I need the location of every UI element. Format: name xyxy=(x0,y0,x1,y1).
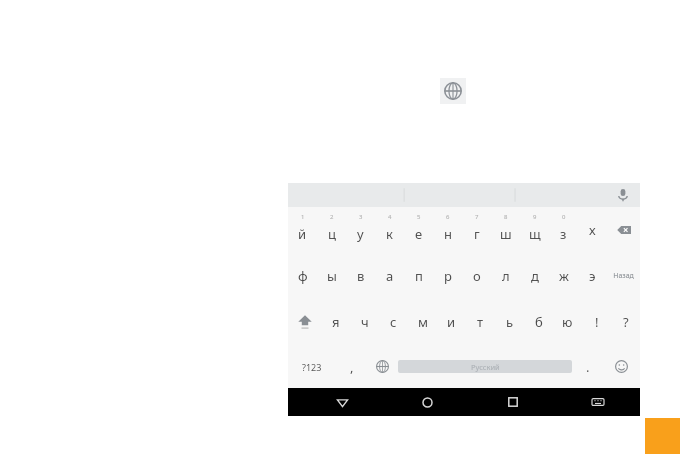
staticText: ж xyxy=(559,267,569,285)
button[interactable]: и xyxy=(437,299,466,345)
staticText: 0 xyxy=(562,213,566,221)
staticText: 5 xyxy=(417,213,421,221)
staticText: 7 xyxy=(475,213,479,221)
button[interactable]: 4 xyxy=(375,207,404,253)
button[interactable]: д xyxy=(520,253,549,299)
staticText: ы xyxy=(327,267,337,285)
staticText: т xyxy=(477,313,484,331)
staticText: г xyxy=(474,225,480,243)
button[interactable]: , xyxy=(336,345,367,388)
staticText: 2 xyxy=(330,213,334,221)
staticText: з xyxy=(560,225,567,243)
staticText: и xyxy=(447,313,456,331)
staticText: , xyxy=(350,358,354,376)
button[interactable]: ь xyxy=(495,299,524,345)
button[interactable]: ч xyxy=(350,299,379,345)
staticText: ! xyxy=(595,313,599,331)
button[interactable]: ю xyxy=(553,299,582,345)
staticText: п xyxy=(415,267,423,285)
button[interactable]: Switch language xyxy=(367,345,398,388)
button[interactable]: б xyxy=(524,299,553,345)
button[interactable]: ! xyxy=(582,299,611,345)
button[interactable]: с xyxy=(379,299,408,345)
staticText: й xyxy=(298,225,307,243)
staticText: я xyxy=(332,313,340,331)
button[interactable]: я xyxy=(321,299,350,345)
button[interactable]: п xyxy=(404,253,433,299)
button[interactable]: . xyxy=(572,345,603,388)
staticText: л xyxy=(502,267,510,285)
staticText: Назад xyxy=(613,271,634,281)
button[interactable]: х xyxy=(578,207,607,253)
staticText: ц xyxy=(328,225,336,243)
staticText: о xyxy=(473,267,481,285)
button[interactable]: 8 xyxy=(491,207,520,253)
staticText: ю xyxy=(562,313,573,331)
staticText: ? xyxy=(623,313,629,331)
button[interactable]: 5 xyxy=(404,207,433,253)
button[interactable]: Назад xyxy=(607,253,640,299)
button[interactable]: о xyxy=(462,253,491,299)
staticText: 8 xyxy=(504,213,508,221)
staticText: ш xyxy=(500,225,512,243)
staticText: к xyxy=(386,225,393,243)
button[interactable]: 2 xyxy=(317,207,346,253)
button[interactable]: э xyxy=(578,253,607,299)
staticText: щ xyxy=(529,225,541,243)
staticText: ?123 xyxy=(302,361,322,373)
staticText: р xyxy=(444,267,452,285)
staticText: 9 xyxy=(533,213,537,221)
button[interactable]: ж xyxy=(549,253,578,299)
staticText: в xyxy=(357,267,365,285)
button[interactable]: Emoji xyxy=(603,345,640,388)
staticText: е xyxy=(415,225,423,243)
button[interactable]: 6 xyxy=(433,207,462,253)
staticText: м xyxy=(418,313,428,331)
button[interactable]: ? xyxy=(611,299,640,345)
button[interactable]: р xyxy=(433,253,462,299)
button[interactable]: Back xyxy=(300,388,385,416)
staticText: ф xyxy=(298,267,308,285)
staticText: 3 xyxy=(359,213,363,221)
staticText: ь xyxy=(506,313,514,331)
button[interactable]: ы xyxy=(317,253,346,299)
button[interactable]: Backspace xyxy=(607,207,640,253)
staticText: Русский xyxy=(471,362,500,372)
button[interactable]: Change language xyxy=(440,78,466,104)
button[interactable]: Voice input xyxy=(614,186,632,204)
button[interactable]: 7 xyxy=(462,207,491,253)
staticText: 4 xyxy=(388,213,392,221)
button[interactable]: Recents xyxy=(470,388,555,416)
button[interactable]: м xyxy=(408,299,437,345)
button[interactable]: 0 xyxy=(549,207,578,253)
staticText: у xyxy=(357,225,364,243)
button[interactable]: в xyxy=(346,253,375,299)
staticText: н xyxy=(444,225,452,243)
staticText: э xyxy=(589,267,596,285)
button[interactable]: ?123 xyxy=(288,345,336,388)
button[interactable]: л xyxy=(491,253,520,299)
staticText: д xyxy=(531,267,539,285)
button[interactable]: а xyxy=(375,253,404,299)
staticText: с xyxy=(390,313,397,331)
staticText: 1 xyxy=(301,213,305,221)
button[interactable]: Shift xyxy=(288,299,321,345)
button[interactable]: Home xyxy=(385,388,470,416)
button[interactable]: т xyxy=(466,299,495,345)
button[interactable]: 3 xyxy=(346,207,375,253)
staticText: ч xyxy=(361,313,369,331)
staticText: . xyxy=(586,358,590,376)
button[interactable]: Русский xyxy=(398,360,572,373)
staticText: б xyxy=(535,313,543,331)
button[interactable]: 9 xyxy=(520,207,549,253)
button[interactable]: ф xyxy=(288,253,317,299)
button[interactable]: Hide keyboard xyxy=(555,388,640,416)
staticText: х xyxy=(589,221,596,239)
staticText: а xyxy=(386,267,394,285)
button[interactable]: 1 xyxy=(288,207,317,253)
staticText: 6 xyxy=(446,213,450,221)
